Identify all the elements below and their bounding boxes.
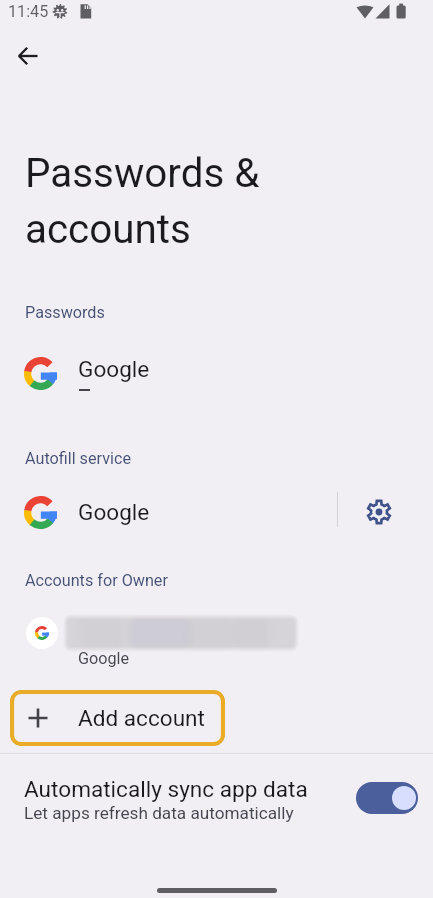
staticText: Automatically sync app data (24, 776, 308, 802)
button[interactable]: Automatically sync app data (0, 768, 433, 830)
staticText: Passwords (25, 303, 105, 322)
staticText: Autofill service (25, 449, 132, 468)
staticText: Google (78, 499, 150, 525)
staticText: Google (78, 649, 130, 668)
button[interactable]: Google (0, 602, 433, 668)
button[interactable]: Google (0, 344, 433, 402)
staticText: Add account (78, 705, 205, 731)
button[interactable]: Google (0, 484, 337, 540)
button[interactable]: Autofill settings (355, 484, 403, 540)
staticText: Let apps refresh data automatically (24, 803, 294, 823)
staticText: Google (78, 356, 150, 382)
button[interactable]: Add account (10, 690, 225, 746)
staticText: Accounts for Owner (25, 571, 168, 590)
staticText: 11:45 (8, 2, 49, 21)
staticText: Passwords & accounts (25, 150, 260, 252)
button[interactable]: Automatically sync app data (356, 782, 418, 814)
button[interactable]: Navigate up (4, 32, 52, 80)
